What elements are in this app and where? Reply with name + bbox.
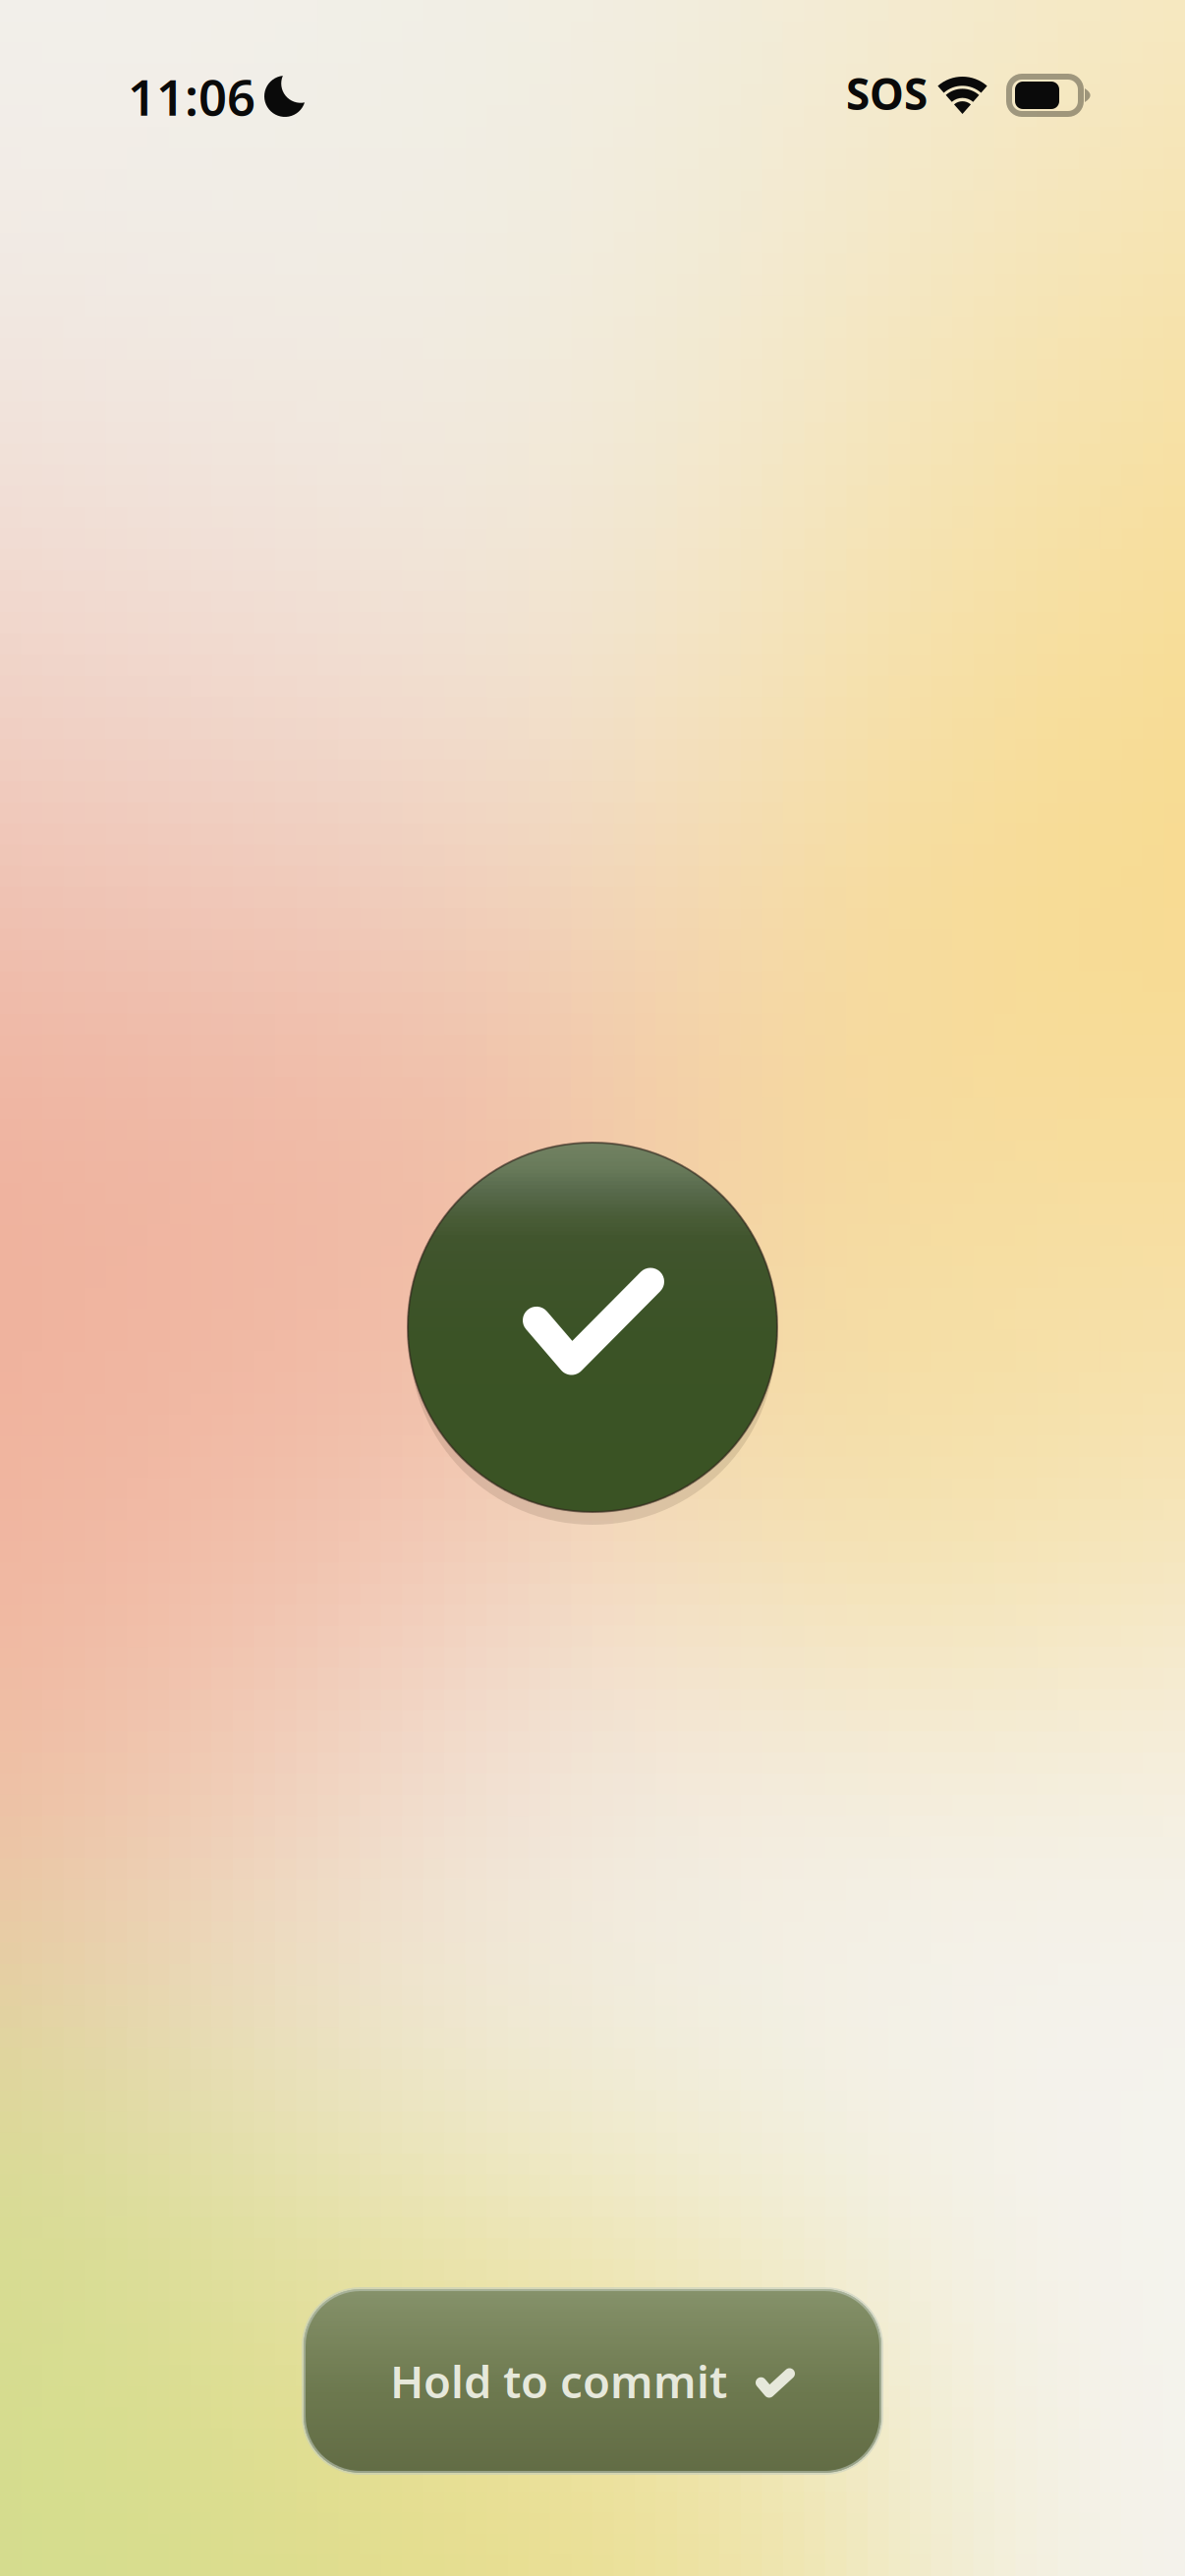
staticText: Hold to commit [390,2351,727,2411]
staticText: 11:06 [128,63,255,129]
staticText: SOS [846,65,928,122]
button[interactable]: Committed [408,1143,777,1512]
button[interactable]: Hold to commit [304,2289,881,2473]
